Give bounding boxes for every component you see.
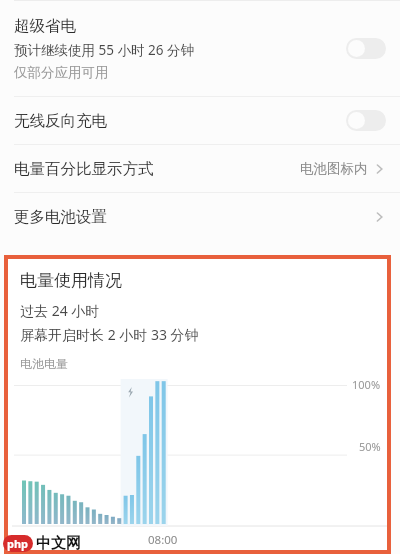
other: Open bbox=[370, 159, 390, 179]
staticText: 更多电池设置 bbox=[14, 207, 370, 227]
staticText: 过去 24 小时 bbox=[20, 301, 100, 320]
staticText: 电量百分比显示方式 bbox=[14, 159, 300, 179]
button[interactable]: 更多电池设置 bbox=[0, 193, 400, 240]
staticText: 50% bbox=[359, 439, 381, 454]
staticText: 电池电量 bbox=[20, 356, 68, 371]
button[interactable]: 电量使用情况 bbox=[8, 259, 387, 550]
button[interactable]: 电量百分比显示方式 bbox=[0, 145, 400, 192]
staticText: 超级省电 bbox=[14, 16, 76, 36]
button[interactable]: Toggle bbox=[346, 110, 386, 131]
other: Open bbox=[370, 207, 390, 227]
staticText: php bbox=[7, 536, 29, 551]
button[interactable]: 无线反向充电 bbox=[0, 97, 400, 144]
staticText: 中文网 bbox=[36, 534, 81, 553]
staticText: 08:00 bbox=[148, 532, 178, 548]
staticText: 仅部分应用可用 bbox=[14, 64, 109, 81]
button[interactable]: Toggle bbox=[346, 38, 386, 59]
staticText: 无线反向充电 bbox=[14, 111, 346, 131]
staticText: 预计继续使用 55 小时 26 分钟 bbox=[14, 41, 194, 59]
staticText: 电池图标内 bbox=[300, 160, 368, 177]
staticText: 屏幕开启时长 2 小时 33 分钟 bbox=[20, 325, 199, 344]
staticText: 电量使用情况 bbox=[20, 270, 122, 291]
button[interactable]: 超级省电 bbox=[0, 14, 400, 85]
staticText: 100% bbox=[352, 377, 381, 392]
